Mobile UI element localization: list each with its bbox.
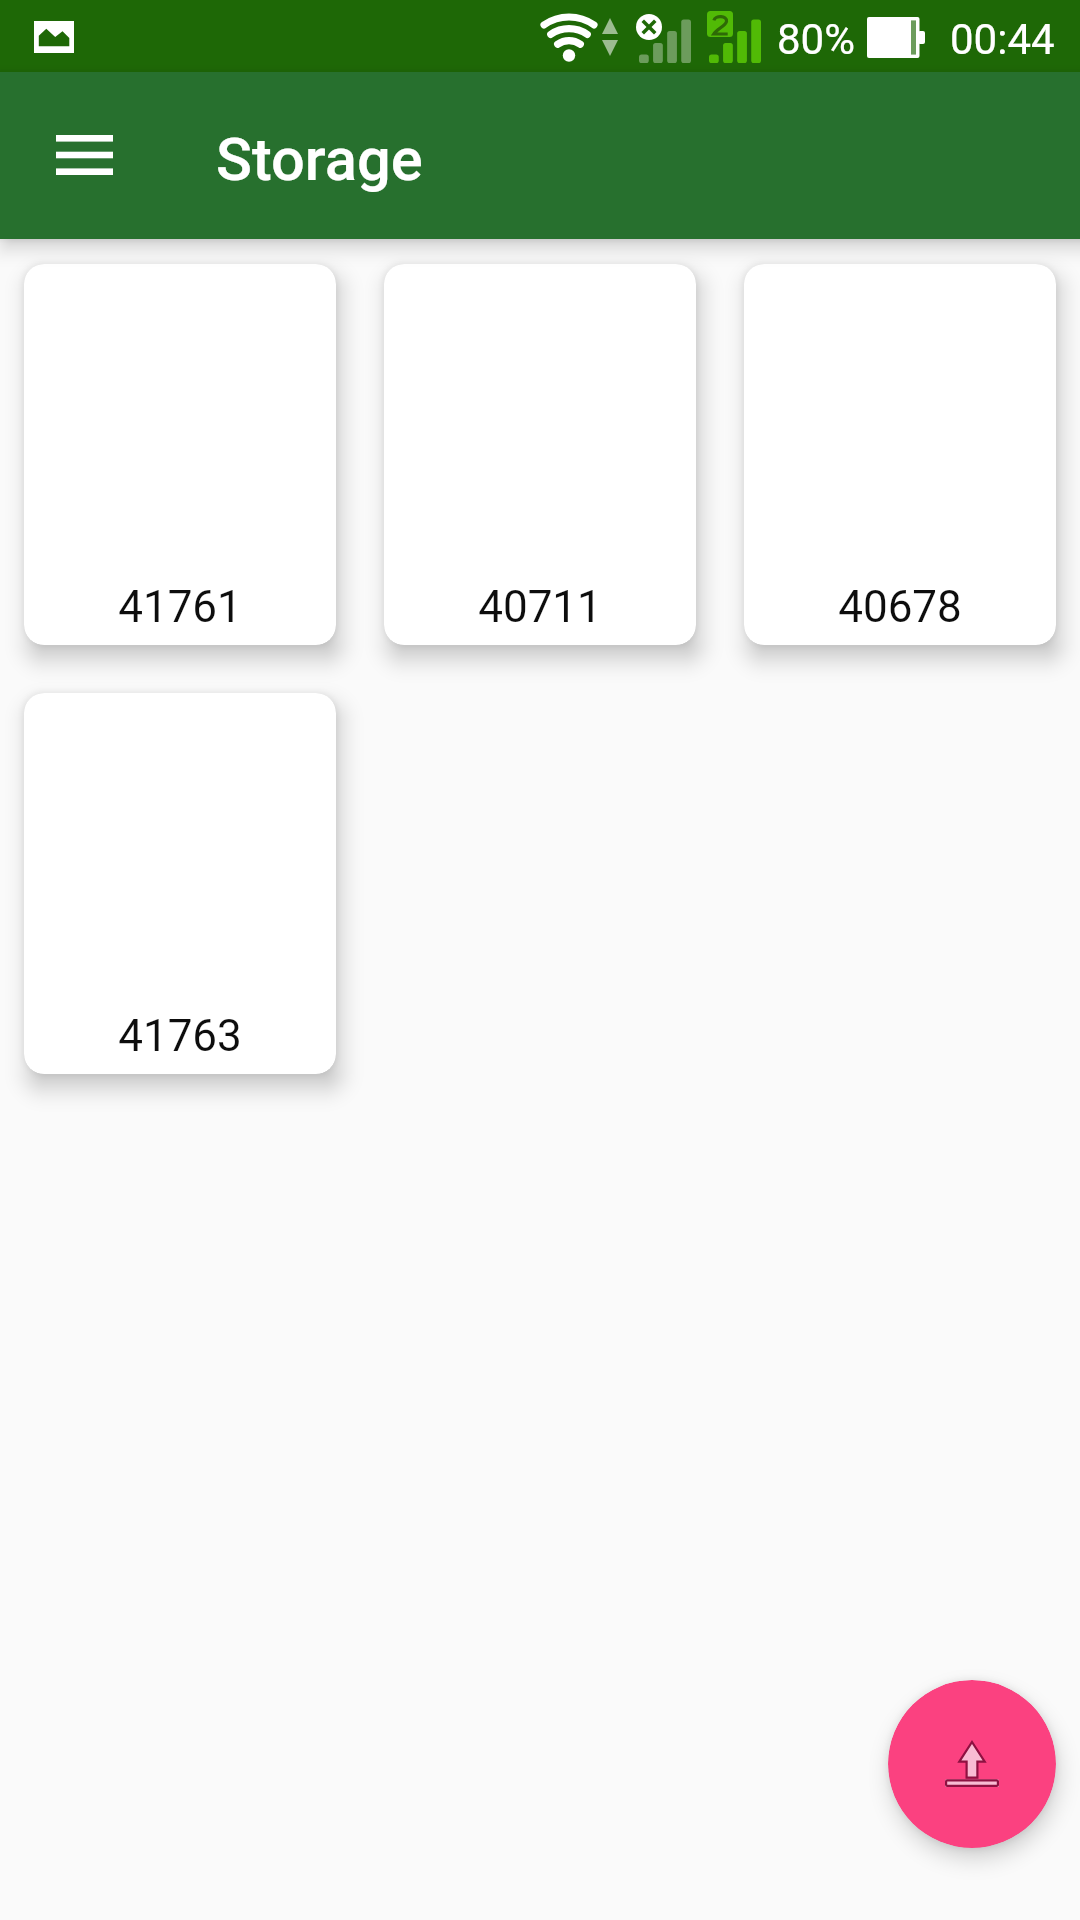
- button[interactable]: 41761: [24, 264, 336, 645]
- staticText: 40678: [838, 581, 962, 633]
- staticText: 00:44: [950, 15, 1055, 64]
- staticText: Storage: [216, 125, 423, 195]
- staticText: 80%: [777, 15, 855, 64]
- button[interactable]: Open navigation menu: [32, 103, 136, 207]
- button[interactable]: 40711: [384, 264, 696, 645]
- button[interactable]: Upload: [888, 1680, 1056, 1848]
- button[interactable]: 41763: [24, 693, 336, 1074]
- staticText: 41761: [118, 581, 242, 633]
- staticText: 40711: [478, 581, 602, 633]
- button[interactable]: 40678: [744, 264, 1056, 645]
- staticText: 41763: [118, 1010, 242, 1062]
